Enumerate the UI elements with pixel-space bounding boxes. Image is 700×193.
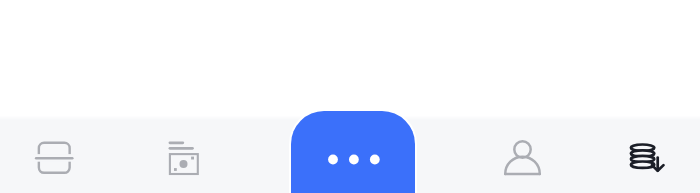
button[interactable]: More options bbox=[291, 111, 415, 193]
button[interactable]: Payments bbox=[140, 118, 280, 193]
button[interactable]: Profile bbox=[450, 118, 590, 193]
button[interactable]: Scan card bbox=[0, 118, 140, 193]
button[interactable]: Deposit bbox=[580, 118, 700, 193]
